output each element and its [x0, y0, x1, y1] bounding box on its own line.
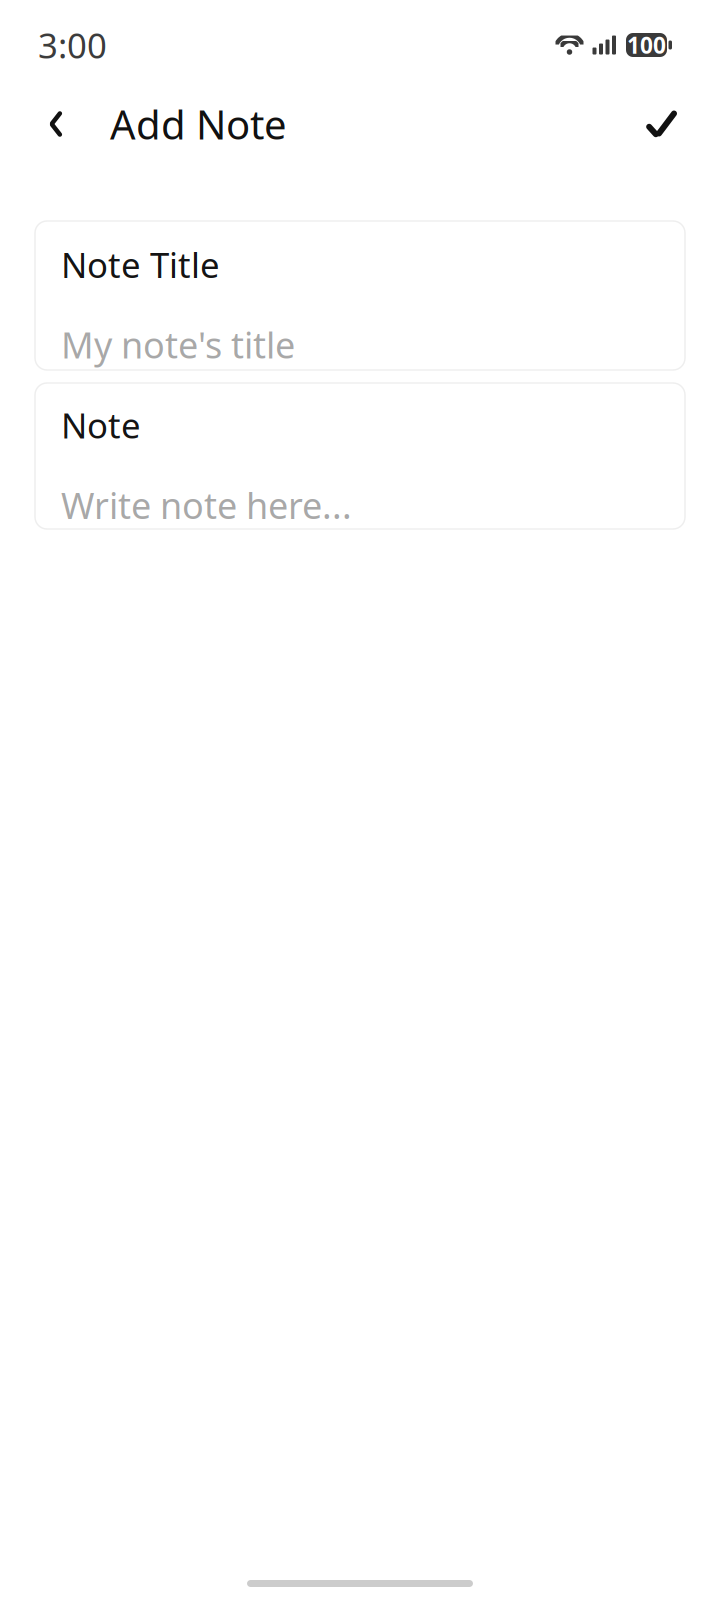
button[interactable]: Note Title — [35, 221, 685, 370]
staticText: 100 — [627, 30, 666, 60]
button[interactable]: Note — [35, 383, 685, 529]
staticText: 3:00 — [38, 22, 107, 68]
staticText: Add Note — [110, 97, 287, 150]
staticText: Write note here... — [61, 481, 352, 529]
button[interactable]: Back — [24, 92, 88, 156]
staticText: Note — [61, 402, 141, 448]
staticText: Note Title — [61, 242, 220, 288]
staticText: My note's title — [61, 321, 295, 368]
button[interactable]: Save note — [630, 92, 694, 156]
